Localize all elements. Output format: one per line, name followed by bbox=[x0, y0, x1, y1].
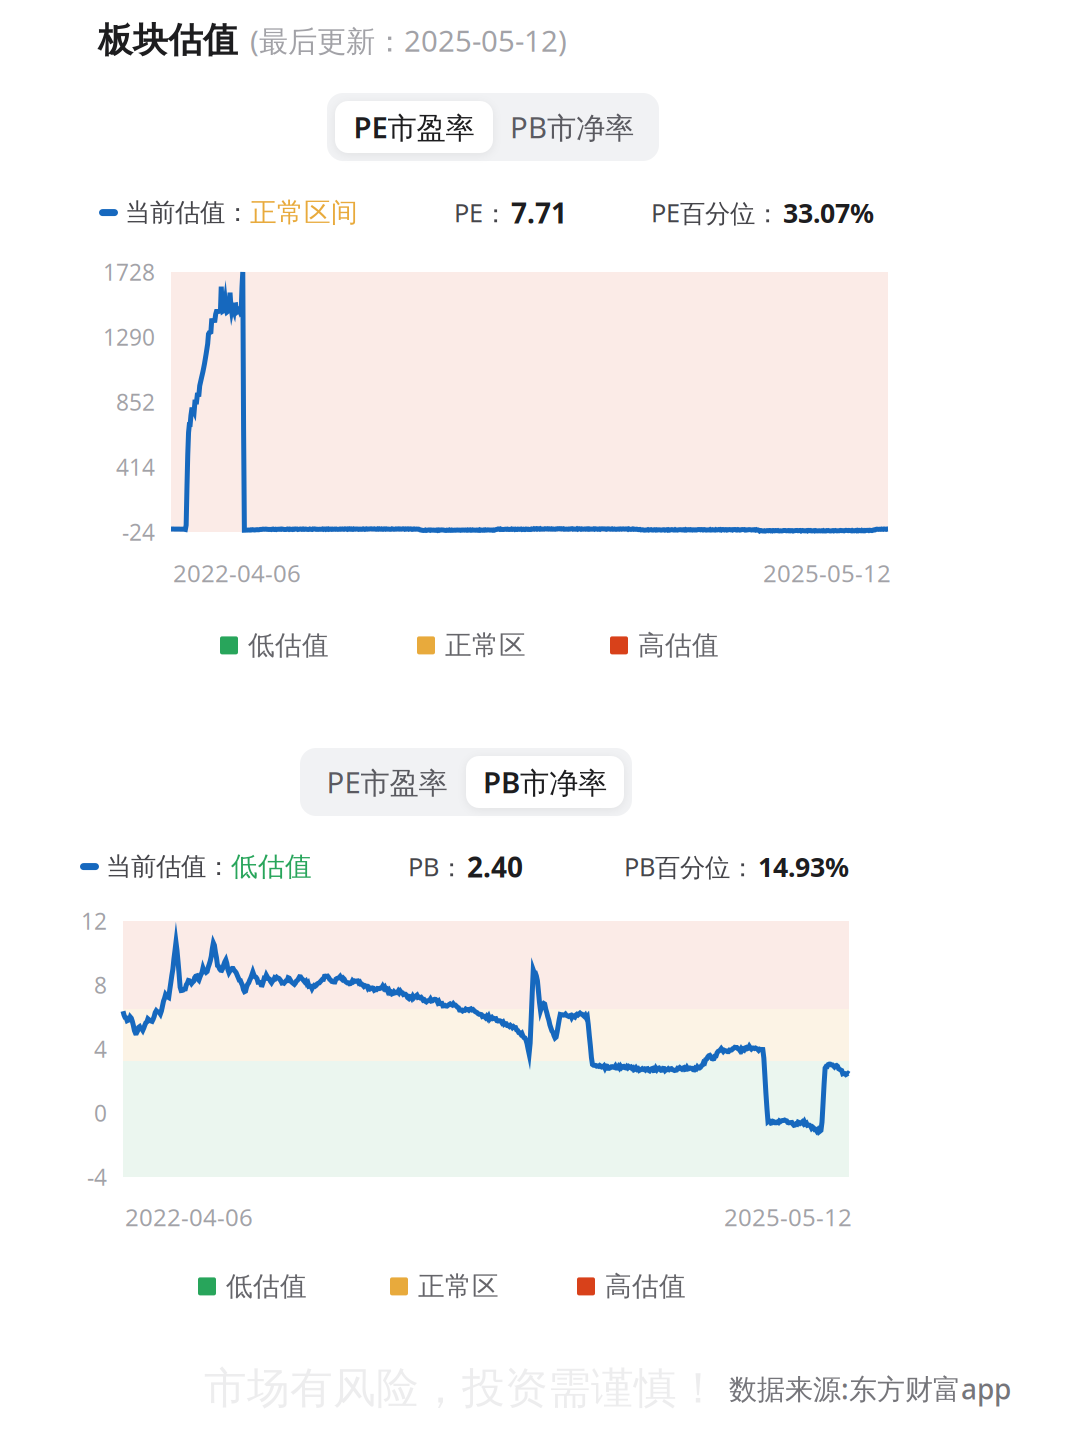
staticText: 低估值 bbox=[231, 850, 312, 883]
staticText: PE： bbox=[454, 196, 508, 229]
staticText: 正常区 bbox=[445, 629, 526, 662]
staticText: 2022-04-06 bbox=[125, 1201, 253, 1233]
button[interactable]: PB市净率 bbox=[493, 101, 651, 153]
staticText: 852 bbox=[116, 387, 155, 417]
staticText: PB市净率 bbox=[483, 762, 607, 801]
staticText: 414 bbox=[116, 452, 155, 482]
button[interactable]: PE市盈率 bbox=[308, 756, 466, 808]
staticText: 高估值 bbox=[638, 629, 719, 662]
staticText: 1290 bbox=[103, 322, 155, 352]
staticText: 7.71 bbox=[511, 194, 567, 231]
staticText: 数据来源:东方财富app bbox=[729, 1370, 1011, 1407]
staticText: -4 bbox=[87, 1162, 107, 1192]
staticText: 12 bbox=[81, 906, 107, 936]
staticText: PB： bbox=[408, 850, 464, 883]
staticText: 0 bbox=[94, 1098, 107, 1128]
staticText: 14.93% bbox=[758, 849, 849, 884]
staticText: PE市盈率 bbox=[326, 762, 447, 801]
staticText: 2.40 bbox=[467, 848, 523, 885]
staticText: 2025-05-12 bbox=[763, 557, 891, 589]
staticText: -24 bbox=[122, 517, 155, 547]
staticText: 33.07% bbox=[783, 195, 874, 230]
staticText: 低估值 bbox=[248, 629, 329, 662]
staticText: 当前估值： bbox=[125, 197, 250, 228]
staticText: 4 bbox=[94, 1034, 107, 1064]
staticText: 1728 bbox=[103, 257, 155, 287]
staticText: PB市净率 bbox=[510, 107, 634, 146]
staticText: PE市盈率 bbox=[353, 107, 474, 146]
staticText: 低估值 bbox=[226, 1270, 307, 1303]
staticText: 高估值 bbox=[605, 1270, 686, 1303]
staticText: 2025-05-12 bbox=[724, 1201, 852, 1233]
staticText: 正常区 bbox=[418, 1270, 499, 1303]
staticText: 2022-04-06 bbox=[173, 557, 301, 589]
staticText: 8 bbox=[94, 970, 107, 1000]
staticText: (最后更新：2025-05-12) bbox=[250, 21, 567, 60]
staticText: 当前估值： bbox=[106, 851, 231, 882]
staticText: PE百分位： bbox=[651, 196, 780, 229]
button[interactable]: PB市净率 bbox=[466, 756, 624, 808]
staticText: 正常区间 bbox=[250, 196, 358, 229]
staticText: PB百分位： bbox=[624, 850, 755, 883]
staticText: 市场有风险，投资需谨慎！ bbox=[204, 1362, 720, 1414]
staticText: 板块估值 bbox=[98, 19, 238, 62]
button[interactable]: PE市盈率 bbox=[335, 101, 493, 153]
